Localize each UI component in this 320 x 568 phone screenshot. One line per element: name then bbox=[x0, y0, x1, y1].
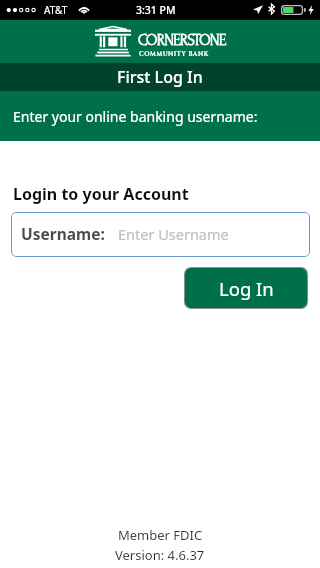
staticText: CORNERSTONE bbox=[138, 32, 226, 49]
staticText: Login to your Account bbox=[13, 183, 189, 205]
staticText: AT&T bbox=[44, 3, 68, 17]
staticText: Log In bbox=[219, 276, 274, 301]
staticText: Username: bbox=[21, 223, 105, 244]
staticText: COMMUNITY BANK bbox=[139, 50, 209, 58]
staticText: First Log In bbox=[117, 66, 203, 88]
button[interactable]: Log In bbox=[185, 268, 307, 308]
staticText: Version: 4.6.37 bbox=[115, 546, 205, 564]
button[interactable]: Username: bbox=[11, 212, 310, 257]
staticText: Member FDIC bbox=[118, 526, 203, 544]
staticText: Enter your online banking username: bbox=[13, 107, 258, 126]
staticText: 3:31 PM bbox=[136, 3, 176, 17]
staticText: Enter Username bbox=[118, 224, 229, 244]
